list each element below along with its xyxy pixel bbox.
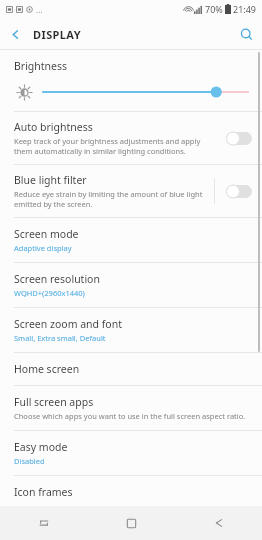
staticText: Screen zoom and font [14,317,122,331]
button[interactable]: Icon frames [0,476,262,506]
staticText: Home screen [14,362,80,376]
staticText: Full screen apps [14,395,94,409]
staticText: Small, Extra small, Default [14,333,106,343]
staticText: 21:49 [233,3,257,15]
button[interactable]: Recents [0,506,88,540]
staticText: Reduce eye strain by limiting the amount… [14,189,208,209]
staticText: Icon frames [14,485,73,497]
button[interactable]: Home screen [0,353,262,385]
staticText: DISPLAY [33,27,82,42]
staticText: WQHD+(2960x1440) [14,288,85,298]
button[interactable]: Back [175,506,262,540]
button[interactable]: Brightness slider [43,83,248,101]
staticText: 70% [205,3,223,15]
button[interactable]: Auto brightness [0,112,262,164]
button[interactable]: Back [0,19,30,49]
button[interactable]: Brightness level [14,82,34,102]
staticText: Auto brightness [14,120,93,134]
button[interactable]: Blue light filter toggle [222,180,256,202]
button[interactable]: Home [88,506,175,540]
staticText: Choose which apps you want to use in the… [14,411,246,421]
button[interactable]: Search [230,18,262,50]
staticText: Disabled [14,456,45,466]
button[interactable]: Auto brightness toggle [222,127,256,149]
button[interactable]: Easy mode [0,431,262,475]
button[interactable]: Screen mode [0,218,262,262]
button[interactable]: Screen zoom and font [0,308,262,352]
button[interactable]: Full screen apps [0,386,262,430]
button[interactable]: Blue light filter [0,165,262,217]
staticText: Adaptive display [14,243,72,253]
staticText: Screen resolution [14,272,100,286]
staticText: Brightness [14,59,68,73]
staticText: Keep track of your brightness adjustment… [14,136,216,156]
staticText: Easy mode [14,440,68,454]
staticText: ... [36,4,43,15]
staticText: Blue light filter [14,173,87,187]
button[interactable]: Screen resolution [0,263,262,307]
staticText: Screen mode [14,227,79,241]
